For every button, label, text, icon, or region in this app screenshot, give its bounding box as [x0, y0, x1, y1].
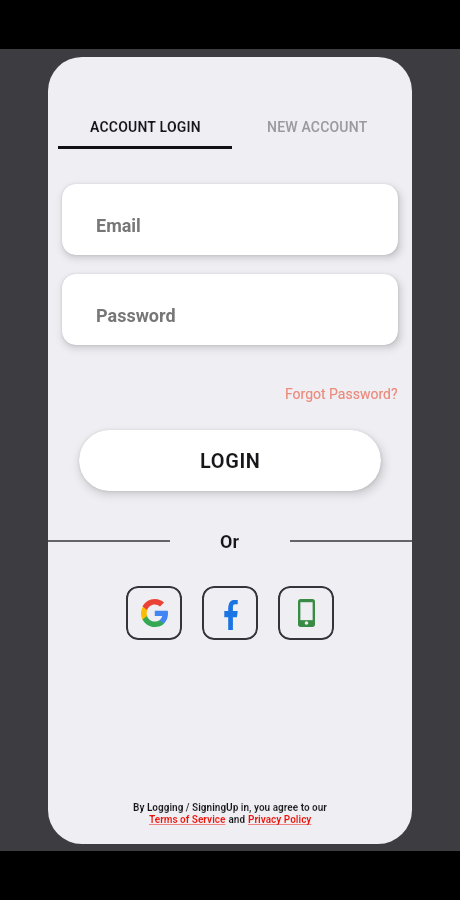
button[interactable]: Sign in with Facebook [202, 586, 258, 640]
button[interactable]: LOGIN [79, 430, 381, 491]
button[interactable]: Forgot Password? [280, 382, 403, 406]
staticText: Password [96, 305, 176, 326]
staticText: Email [96, 215, 141, 236]
staticText: LOGIN [200, 449, 261, 472]
staticText: ACCOUNT LOGIN [90, 119, 201, 135]
button[interactable]: Email [62, 184, 398, 255]
staticText: NEW ACCOUNT [267, 119, 368, 135]
staticText: Forgot Password? [285, 386, 398, 402]
staticText: and [226, 814, 248, 826]
button[interactable]: Sign in with phone number [278, 586, 334, 640]
button[interactable]: Sign in with Google [126, 586, 182, 640]
button[interactable]: Password [62, 274, 398, 345]
button[interactable]: ACCOUNT LOGIN [58, 111, 232, 159]
button[interactable]: NEW ACCOUNT [257, 111, 377, 151]
staticText: Or [220, 531, 240, 552]
staticText: By Logging / SigningUp in, you agree to … [133, 802, 327, 814]
button[interactable]: Terms of Service [149, 814, 226, 826]
button[interactable]: Privacy Policy [248, 814, 312, 826]
